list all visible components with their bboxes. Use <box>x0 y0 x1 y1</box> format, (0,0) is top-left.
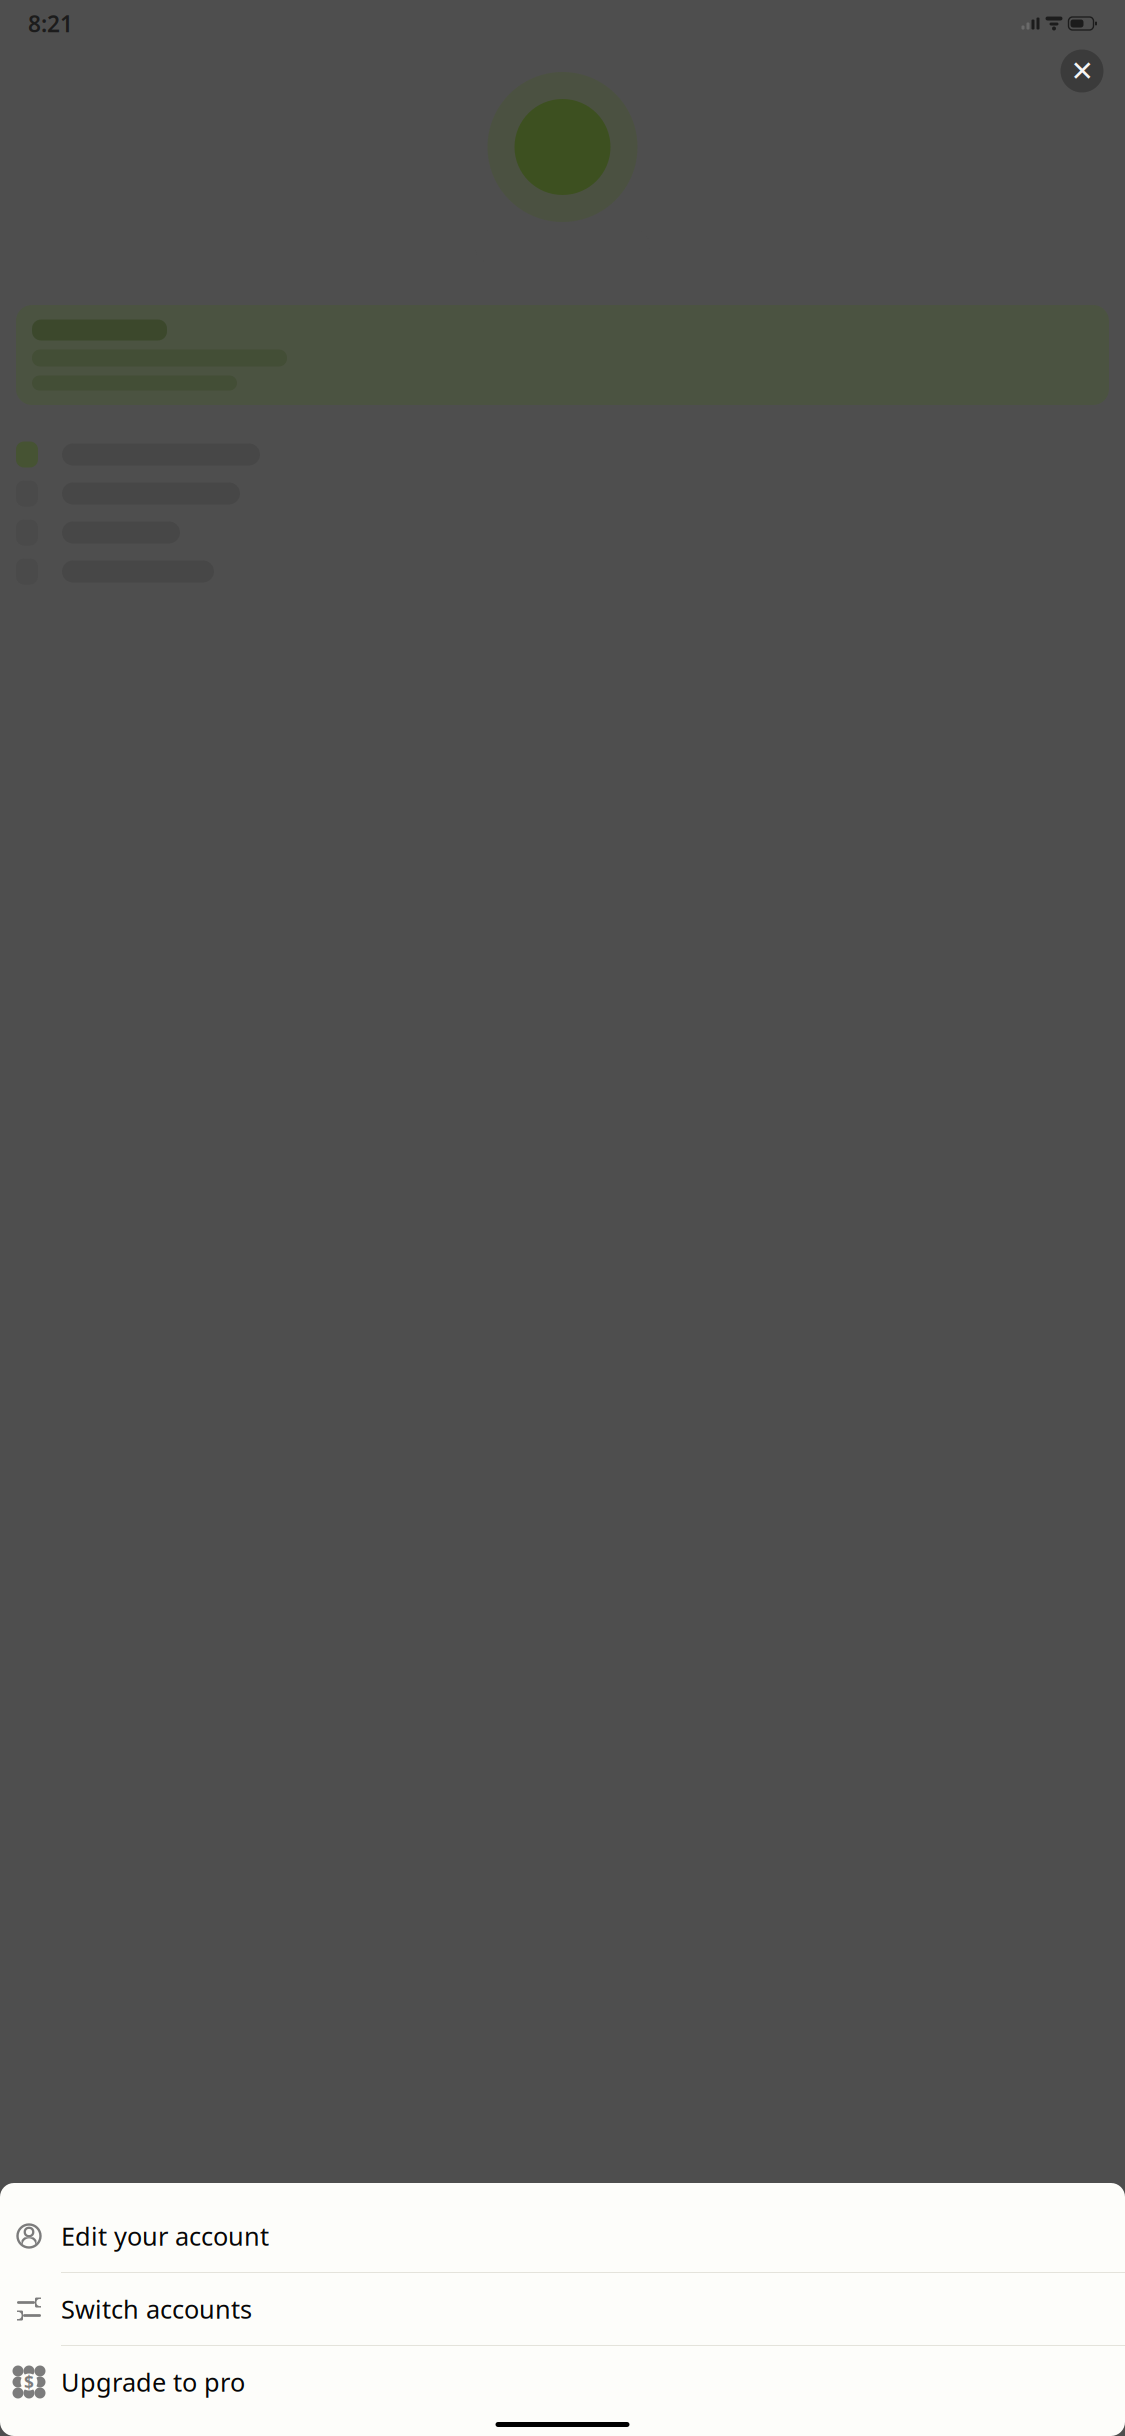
staticText: Switch accounts <box>61 2292 252 2326</box>
staticText: 8:21 <box>28 8 73 38</box>
button[interactable]: Switch accounts <box>0 2273 1125 2346</box>
staticText: ✕ <box>1070 55 1093 87</box>
button[interactable]: Edit your account <box>0 2200 1125 2273</box>
staticText: Edit your account <box>61 2219 269 2253</box>
staticText: Upgrade to pro <box>61 2365 245 2399</box>
staticText: $ <box>24 2370 34 2393</box>
button[interactable]: $ <box>0 2346 1125 2418</box>
button[interactable]: Close <box>1058 47 1106 95</box>
